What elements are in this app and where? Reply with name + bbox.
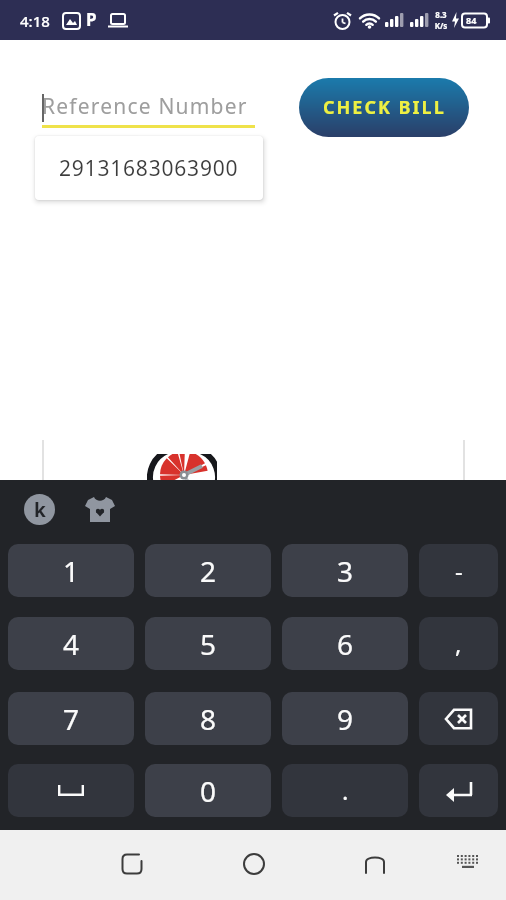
staticText: . bbox=[342, 774, 349, 807]
staticText: k bbox=[34, 497, 46, 523]
button[interactable]: 1 bbox=[8, 544, 134, 597]
button[interactable]: 5 bbox=[145, 617, 271, 670]
staticText: 84 bbox=[466, 14, 477, 26]
button[interactable] bbox=[8, 764, 134, 817]
button[interactable] bbox=[120, 852, 144, 876]
button[interactable] bbox=[85, 497, 115, 523]
button[interactable]: CHECK BILL bbox=[299, 78, 469, 137]
button[interactable]: - bbox=[419, 544, 498, 597]
button[interactable] bbox=[419, 764, 498, 817]
button[interactable] bbox=[456, 855, 480, 872]
button[interactable]: 29131683063900 bbox=[35, 136, 263, 200]
staticText: 5 bbox=[200, 625, 217, 663]
staticText: K/s bbox=[433, 20, 449, 31]
button[interactable] bbox=[242, 852, 266, 876]
button[interactable]: 2 bbox=[145, 544, 271, 597]
button[interactable]: 4 bbox=[8, 617, 134, 670]
staticText: 4 bbox=[63, 625, 80, 663]
staticText: 8.3 bbox=[433, 9, 449, 20]
button[interactable]: 7 bbox=[8, 692, 134, 745]
button[interactable]: , bbox=[419, 617, 498, 670]
staticText: 2 bbox=[200, 552, 217, 590]
button[interactable] bbox=[419, 692, 498, 745]
staticText: 4:18 bbox=[20, 11, 50, 31]
staticText: 29131683063900 bbox=[59, 154, 239, 183]
staticText: 7 bbox=[63, 700, 80, 738]
button[interactable]: 0 bbox=[145, 764, 271, 817]
button[interactable]: 6 bbox=[282, 617, 408, 670]
button[interactable]: . bbox=[282, 764, 408, 817]
button[interactable]: 3 bbox=[282, 544, 408, 597]
button[interactable]: k bbox=[24, 494, 55, 525]
button[interactable]: 8 bbox=[145, 692, 271, 745]
staticText: 3 bbox=[337, 552, 354, 590]
staticText: - bbox=[455, 554, 463, 587]
button[interactable]: 9 bbox=[282, 692, 408, 745]
staticText: CHECK BILL bbox=[323, 95, 446, 120]
staticText: P bbox=[86, 8, 97, 31]
staticText: 8 bbox=[200, 700, 217, 738]
button[interactable] bbox=[363, 852, 387, 876]
staticText: 6 bbox=[337, 625, 354, 663]
staticText: 9 bbox=[337, 700, 354, 738]
staticText: Reference Number bbox=[42, 92, 248, 121]
staticText: , bbox=[455, 627, 462, 660]
staticText: 0 bbox=[200, 772, 217, 810]
staticText: 1 bbox=[63, 552, 80, 590]
